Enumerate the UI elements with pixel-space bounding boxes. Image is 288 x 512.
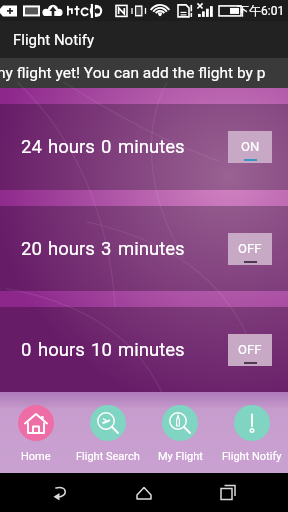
staticText: hours (48, 136, 95, 158)
staticText: 20 (21, 238, 42, 260)
button[interactable]: Back (38, 473, 84, 512)
button[interactable]: Flight Notify (0, 21, 288, 58)
staticText: hours (38, 339, 85, 361)
button[interactable]: ON (228, 131, 272, 163)
staticText: Flight Notify (222, 450, 282, 463)
staticText: My Flight (158, 450, 203, 463)
button[interactable]: OFF (228, 233, 272, 265)
button[interactable]: Home (0, 402, 72, 463)
button[interactable]: My Flight (144, 402, 216, 463)
staticText: Flight Notify (13, 31, 95, 49)
staticText: hours (48, 238, 95, 260)
button[interactable]: Home (121, 473, 167, 512)
button[interactable]: OFF (228, 334, 272, 366)
staticText: Home (21, 450, 51, 463)
staticText: minutes (118, 136, 185, 158)
staticText: 下午6:01 (237, 3, 285, 18)
staticText: Flight Search (76, 450, 140, 463)
staticText: 3 (101, 238, 112, 260)
button[interactable]: Flight Search (72, 402, 144, 463)
button[interactable]: 20 (0, 206, 288, 291)
button[interactable]: Recent apps (205, 473, 251, 512)
staticText: OFF (238, 342, 262, 357)
staticText: ny flight yet! You can add the flight by… (0, 64, 266, 82)
button[interactable]: 24 (0, 104, 288, 190)
staticText: OFF (238, 241, 262, 256)
staticText: 10 (91, 339, 112, 361)
staticText: 24 (21, 136, 42, 158)
button[interactable]: 0 (0, 307, 288, 392)
button[interactable]: Flight Notify (216, 402, 288, 463)
staticText: 0 (101, 136, 112, 158)
staticText: minutes (118, 238, 185, 260)
staticText: ON (241, 139, 260, 154)
staticText: 0 (21, 339, 32, 361)
button[interactable]: ny flight yet! You can add the flight by… (0, 58, 288, 88)
staticText: minutes (118, 339, 185, 361)
